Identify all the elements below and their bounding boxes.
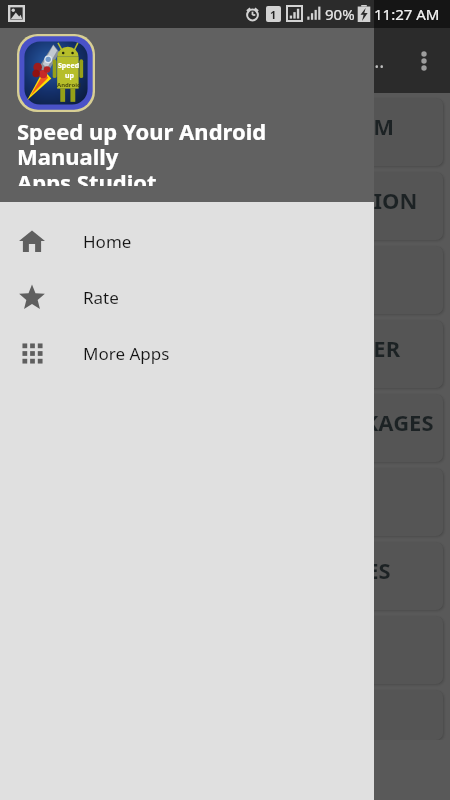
button[interactable]: FREE UP RAM MEMORY SYSTEM bbox=[7, 98, 443, 166]
staticText: Android bbox=[57, 81, 81, 89]
button[interactable]: More Apps bbox=[0, 325, 374, 381]
button[interactable]: FACTORY RESET bbox=[7, 616, 443, 684]
button[interactable]: CLOSE UNUSED APPS SERVICES bbox=[7, 542, 443, 610]
staticText: 1 bbox=[270, 7, 277, 22]
button[interactable]: REMOVE WIDGETS bbox=[7, 468, 443, 536]
staticText: 11:27 AM bbox=[374, 4, 440, 24]
button[interactable]: RESTART THE PHONE bbox=[7, 690, 443, 740]
staticText: DOWNLOAD A BEST TASK KILLER bbox=[50, 333, 401, 363]
staticText: Speed up Your Android Manually Apps Stud… bbox=[17, 116, 267, 186]
staticText: CLOSE UNUSED APPS SERVICES bbox=[59, 555, 391, 585]
button[interactable]: UNINSTALL UNNEEDED APK PACKAGES bbox=[7, 394, 443, 462]
staticText: More Apps bbox=[83, 342, 170, 365]
staticText: Speed up Your Android Manual… bbox=[92, 48, 385, 74]
staticText: 90% bbox=[325, 4, 355, 24]
button[interactable]: More options bbox=[401, 38, 447, 84]
button[interactable]: Home bbox=[0, 213, 374, 269]
staticText: up bbox=[65, 71, 74, 81]
staticText: Home bbox=[83, 230, 132, 253]
staticText: UNINSTALL UNNEEDED APK PACKAGES bbox=[16, 407, 434, 437]
staticText: CLEAR THE RUNNING APPLICATION bbox=[33, 185, 418, 215]
button[interactable]: CLEAR THE RUNNING APPLICATION bbox=[7, 172, 443, 240]
staticText: Speed bbox=[58, 61, 80, 71]
button[interactable]: DISABLE ANIMATIONS bbox=[7, 246, 443, 314]
button[interactable]: DOWNLOAD A BEST TASK KILLER bbox=[7, 320, 443, 388]
staticText: FREE UP RAM MEMORY SYSTEM bbox=[56, 111, 394, 141]
staticText: Rate bbox=[83, 286, 119, 309]
button[interactable]: Rate bbox=[0, 269, 374, 325]
